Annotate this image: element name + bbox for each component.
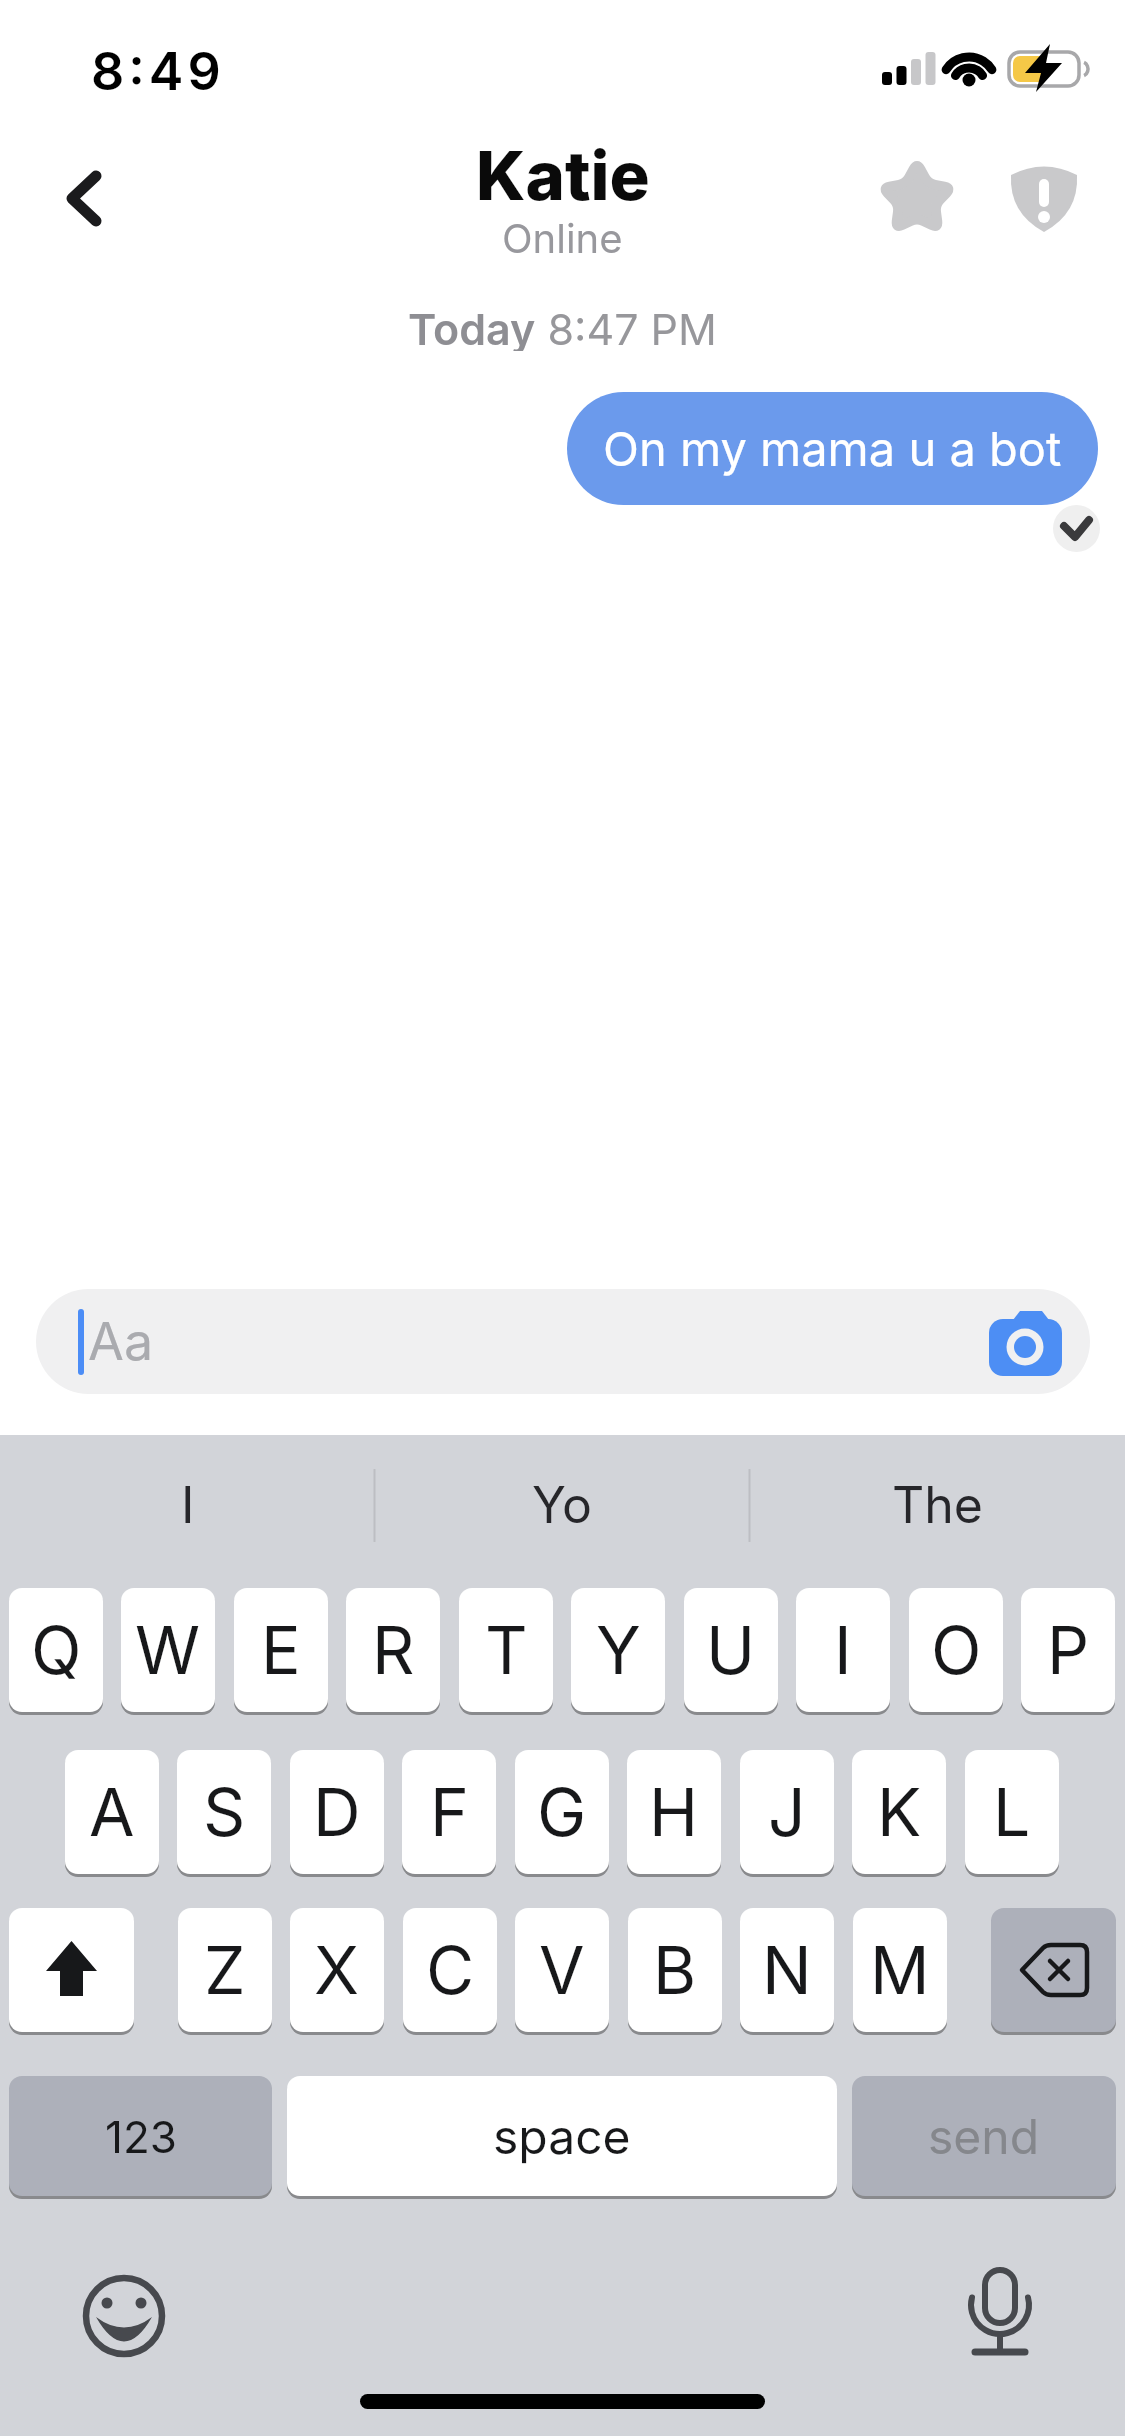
- staticText: Y: [596, 1610, 641, 1690]
- button[interactable]: F: [402, 1750, 496, 1874]
- button[interactable]: The: [750, 1475, 1125, 1535]
- button[interactable]: space: [287, 2076, 837, 2196]
- staticText: N: [762, 1930, 812, 2010]
- staticText: S: [203, 1772, 246, 1852]
- staticText: I: [834, 1610, 852, 1690]
- button[interactable]: [75, 2265, 175, 2365]
- staticText: U: [706, 1610, 756, 1690]
- button[interactable]: J: [740, 1750, 834, 1874]
- button[interactable]: S: [177, 1750, 271, 1874]
- button[interactable]: O: [909, 1588, 1003, 1712]
- button[interactable]: V: [515, 1908, 609, 2032]
- button[interactable]: I: [0, 1475, 375, 1535]
- button[interactable]: [870, 150, 965, 245]
- staticText: space: [493, 2107, 631, 2165]
- staticText: On my mama u a bot: [603, 420, 1062, 477]
- staticText: R: [372, 1610, 415, 1690]
- button[interactable]: X: [290, 1908, 384, 2032]
- button[interactable]: P: [1021, 1588, 1115, 1712]
- staticText: The: [892, 1475, 983, 1535]
- button[interactable]: L: [965, 1750, 1059, 1874]
- staticText: E: [261, 1610, 301, 1690]
- button[interactable]: K: [852, 1750, 946, 1874]
- button[interactable]: H: [627, 1750, 721, 1874]
- button[interactable]: U: [684, 1588, 778, 1712]
- button[interactable]: [1000, 150, 1095, 245]
- button[interactable]: [991, 1908, 1116, 2032]
- button[interactable]: 123: [9, 2076, 272, 2196]
- staticText: B: [653, 1930, 697, 2010]
- staticText: C: [426, 1930, 475, 2010]
- button[interactable]: Yo: [375, 1475, 750, 1535]
- staticText: J: [768, 1772, 806, 1852]
- button[interactable]: N: [740, 1908, 834, 2032]
- button[interactable]: [50, 160, 130, 240]
- staticText: M: [870, 1930, 930, 2010]
- staticText: O: [931, 1610, 982, 1690]
- button[interactable]: B: [628, 1908, 722, 2032]
- staticText: D: [313, 1772, 361, 1852]
- button[interactable]: [980, 1300, 1075, 1385]
- button[interactable]: T: [459, 1588, 553, 1712]
- staticText: Yo: [532, 1475, 593, 1535]
- staticText: X: [314, 1930, 360, 2010]
- staticText: Online: [502, 214, 623, 258]
- button[interactable]: Y: [571, 1588, 665, 1712]
- button[interactable]: [9, 1908, 134, 2032]
- staticText: Q: [31, 1610, 82, 1690]
- staticText: P: [1047, 1610, 1090, 1690]
- button[interactable]: send: [852, 2076, 1116, 2196]
- button[interactable]: [950, 2255, 1050, 2365]
- staticText: V: [539, 1930, 585, 2010]
- staticText: W: [135, 1610, 201, 1690]
- button[interactable]: D: [290, 1750, 384, 1874]
- staticText: Today 8:47 PM: [408, 303, 717, 351]
- staticText: K: [877, 1772, 922, 1852]
- button[interactable]: Aa: [36, 1289, 1090, 1394]
- button[interactable]: I: [796, 1588, 890, 1712]
- staticText: Z: [204, 1930, 246, 2010]
- staticText: L: [993, 1772, 1031, 1852]
- button[interactable]: E: [234, 1588, 328, 1712]
- staticText: 8:49: [91, 40, 225, 96]
- staticText: H: [649, 1772, 699, 1852]
- staticText: 123: [105, 2110, 177, 2163]
- button[interactable]: R: [346, 1588, 440, 1712]
- button[interactable]: Q: [9, 1588, 103, 1712]
- button[interactable]: A: [65, 1750, 159, 1874]
- staticText: send: [928, 2107, 1040, 2165]
- button[interactable]: M: [853, 1908, 947, 2032]
- staticText: Katie: [476, 135, 650, 216]
- staticText: A: [89, 1772, 135, 1852]
- button[interactable]: G: [515, 1750, 609, 1874]
- staticText: F: [430, 1772, 469, 1852]
- button[interactable]: Z: [178, 1908, 272, 2032]
- staticText: T: [485, 1610, 528, 1690]
- staticText: I: [181, 1475, 195, 1535]
- staticText: G: [537, 1772, 587, 1852]
- button[interactable]: On my mama u a bot: [567, 392, 1098, 505]
- button[interactable]: W: [121, 1588, 215, 1712]
- staticText: Aa: [88, 1310, 154, 1373]
- button[interactable]: C: [403, 1908, 497, 2032]
